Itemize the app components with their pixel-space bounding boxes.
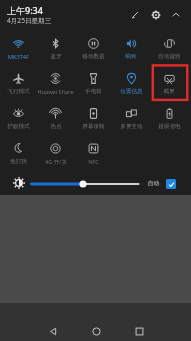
button[interactable]: 热点 (37, 106, 74, 134)
button[interactable]: Brightness (8, 172, 30, 194)
staticText: 4G 开/关 (45, 158, 67, 166)
staticText: 自动 (148, 180, 160, 187)
staticText: MK3T4F (8, 53, 29, 61)
button[interactable]: 蓝牙 (37, 36, 74, 64)
button[interactable]: 屏幕录制 (74, 106, 112, 134)
staticText: 超级省电 (158, 123, 181, 130)
staticText: 截屏 (163, 88, 175, 95)
button[interactable]: 4G 开/关 (37, 141, 74, 169)
button[interactable]: Back (39, 317, 67, 341)
button[interactable]: 超级省电 (150, 106, 188, 134)
button[interactable]: 响铃 (112, 36, 150, 64)
button[interactable]: 截屏 (150, 71, 188, 99)
button[interactable]: 自动旋转 (150, 36, 188, 64)
staticText: 护眼模式 (7, 123, 30, 130)
staticText: 飞行模式 (7, 88, 30, 95)
button[interactable]: 护眼模式 (0, 106, 37, 134)
button[interactable]: Recents (125, 317, 153, 341)
staticText: 多屏互动 (120, 123, 143, 130)
button[interactable]: 位置信息 (112, 71, 150, 99)
staticText: 响铃 (125, 53, 137, 60)
staticText: 移动数据 (82, 53, 105, 60)
button[interactable]: Huawei Share (37, 71, 74, 99)
staticText: 位置信息 (120, 88, 143, 95)
staticText: 自动旋转 (158, 53, 181, 60)
button[interactable]: 免打扰 (0, 141, 37, 169)
staticText: 屏幕录制 (82, 123, 105, 130)
button[interactable]: Edit (126, 6, 143, 23)
button[interactable]: Home (82, 317, 110, 341)
staticText: 手电筒 (85, 88, 102, 95)
staticText: 免打扰 (10, 158, 27, 165)
staticText: 热点 (50, 123, 62, 130)
staticText: NFC (88, 158, 99, 166)
button[interactable]: 多屏互动 (112, 106, 150, 134)
button[interactable]: NFC (74, 141, 112, 169)
staticText: 蓝牙 (50, 53, 62, 60)
button[interactable]: MK3T4F (0, 36, 37, 64)
button[interactable]: 移动数据 (74, 36, 112, 64)
button[interactable]: Auto brightness (166, 179, 176, 189)
button[interactable]: 手电筒 (74, 71, 112, 99)
button[interactable]: 飞行模式 (0, 71, 37, 99)
button[interactable]: Collapse (167, 6, 184, 23)
staticText: 4月25日星期三 (7, 16, 52, 25)
button[interactable]: Settings (147, 6, 164, 23)
staticText: Huawei Share (37, 88, 74, 96)
staticText: 上午9:34 (7, 4, 43, 16)
